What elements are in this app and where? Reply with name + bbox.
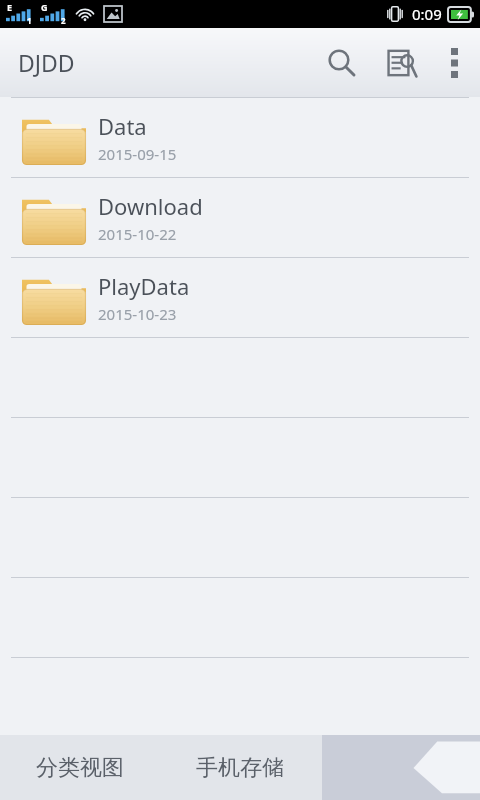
staticText: 1 bbox=[27, 15, 32, 26]
staticText: E bbox=[7, 1, 13, 13]
button[interactable]: 手机存储 bbox=[160, 735, 320, 800]
button[interactable]: Download bbox=[0, 178, 480, 257]
staticText: 分类视图 bbox=[36, 754, 124, 782]
staticText: DJDD bbox=[18, 47, 75, 78]
button[interactable]: Data bbox=[0, 98, 480, 177]
button[interactable]: 分类视图 bbox=[0, 735, 160, 800]
button[interactable]: PlayData bbox=[0, 258, 480, 337]
staticText: 2015-10-23 bbox=[98, 304, 177, 324]
staticText: 2 bbox=[61, 15, 66, 26]
staticText: 2015-10-22 bbox=[98, 224, 177, 244]
staticText: G bbox=[41, 1, 48, 13]
staticText: Data bbox=[98, 111, 147, 141]
button[interactable]: Search bbox=[312, 28, 372, 97]
staticText: 手机存储 bbox=[196, 754, 284, 782]
staticText: Download bbox=[98, 191, 203, 221]
button[interactable]: Document search bbox=[372, 28, 432, 97]
staticText: PlayData bbox=[98, 271, 190, 301]
staticText: 2015-09-15 bbox=[98, 144, 177, 164]
button[interactable]: More options bbox=[432, 28, 476, 97]
staticText: 0:09 bbox=[412, 4, 442, 24]
